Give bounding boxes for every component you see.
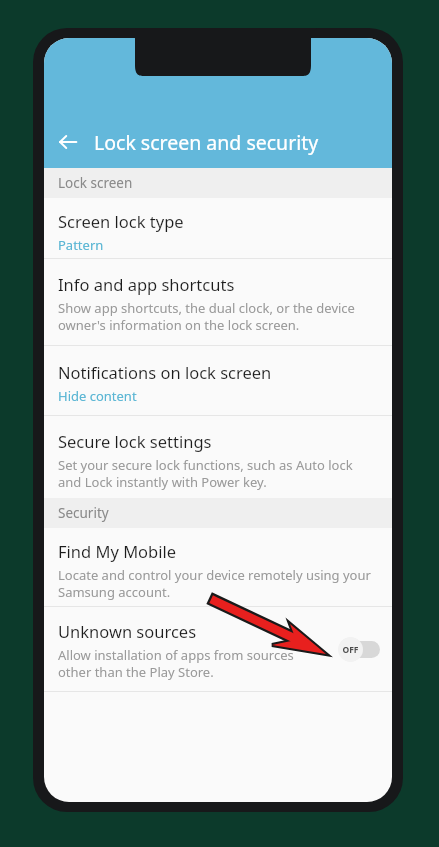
staticText: Pattern <box>58 236 104 254</box>
staticText: Notifications on lock screen <box>58 361 272 383</box>
button[interactable]: Notifications on lock screen <box>44 346 392 415</box>
staticText: Hide content <box>58 387 137 405</box>
staticText: Find My Mobile <box>58 540 177 562</box>
staticText: Info and app shortcuts <box>58 273 235 295</box>
button[interactable]: Info and app shortcuts <box>44 259 392 345</box>
staticText: Locate and control your device remotely … <box>58 566 371 601</box>
staticText: OFF <box>342 644 359 656</box>
button[interactable]: Unknown sources off <box>332 635 380 663</box>
staticText: Allow installation of apps from sources … <box>58 646 294 681</box>
button[interactable]: Screen lock type <box>44 198 392 258</box>
staticText: Set your secure lock functions, such as … <box>58 456 353 491</box>
staticText: Screen lock type <box>58 210 184 232</box>
button[interactable]: Secure lock settings <box>44 416 392 498</box>
button[interactable]: Find My Mobile <box>44 528 392 606</box>
staticText: Lock screen and security <box>94 129 319 156</box>
staticText: Security <box>58 504 109 522</box>
staticText: Secure lock settings <box>58 430 212 452</box>
button[interactable]: Back <box>50 124 86 160</box>
staticText: Lock screen <box>58 174 133 192</box>
staticText: Show app shortcuts, the dual clock, or t… <box>58 299 355 334</box>
staticText: Unknown sources <box>58 620 197 642</box>
button[interactable]: Unknown sources <box>44 607 392 691</box>
